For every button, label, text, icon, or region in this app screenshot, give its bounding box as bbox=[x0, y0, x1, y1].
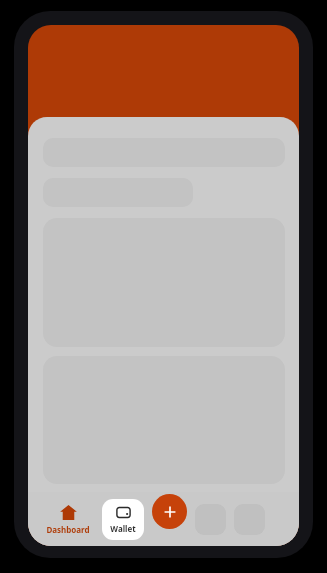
button[interactable]: Dashboard bbox=[40, 500, 96, 539]
button[interactable]: Wallet bbox=[102, 499, 144, 540]
staticText: Dashboard bbox=[46, 524, 90, 535]
button[interactable]: Add bbox=[152, 494, 187, 529]
staticText: Wallet bbox=[110, 523, 136, 534]
